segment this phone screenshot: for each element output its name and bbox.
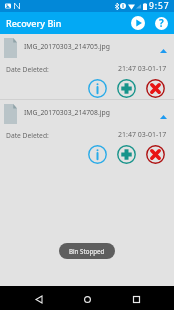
staticText: ? [159,16,164,30]
staticText: Recovery Bin [6,17,62,29]
button[interactable]: Delete [141,140,170,169]
button[interactable]: Bin Stopped [69,243,105,259]
staticText: Date Deleted: [6,65,49,74]
staticText: IMG_20170303_214705.jpg [24,42,110,51]
button[interactable]: Info [83,140,112,169]
staticText: Date Deleted: [6,131,49,140]
button[interactable]: Back [24,287,53,310]
staticText: Bin Stopped [69,247,105,255]
button[interactable]: Info [83,74,112,103]
button[interactable]: Home [73,287,102,310]
button[interactable]: IMG_20170303_214708.jpg [0,100,174,165]
button[interactable]: Restore [112,74,141,103]
staticText: 9:57 [149,0,170,12]
button[interactable]: Restore [112,140,141,169]
button[interactable]: IMG_20170303_214705.jpg [0,34,174,99]
button[interactable]: Collapse [154,107,173,126]
button[interactable]: Recents [122,287,151,310]
button[interactable]: Help [150,12,172,34]
button[interactable]: Delete [141,74,170,103]
staticText: 21:47 03-01-17 [118,130,167,140]
button[interactable]: Collapse [154,41,173,60]
staticText: IMG_20170303_214708.jpg [24,108,110,117]
staticText: 21:47 03-01-17 [118,64,167,74]
button[interactable]: Start bin [127,12,149,34]
